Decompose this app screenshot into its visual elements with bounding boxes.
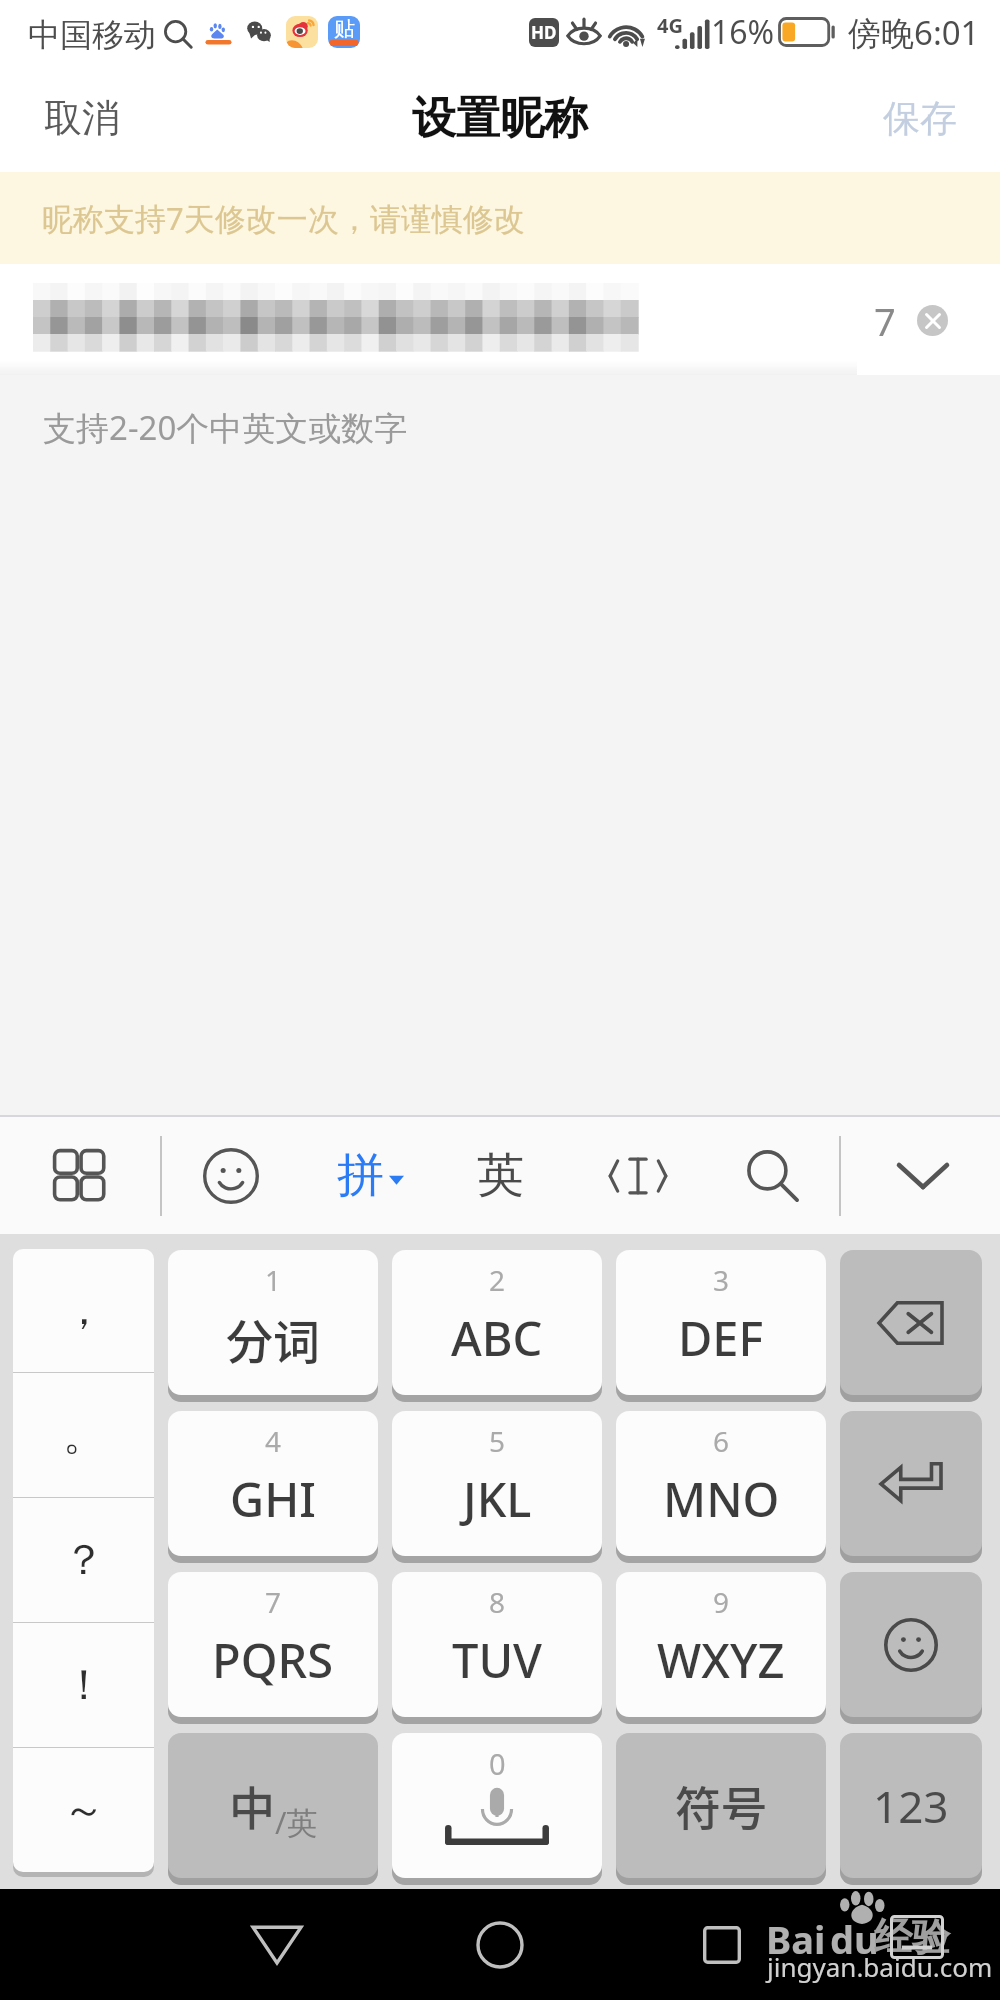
button[interactable]: 7 <box>168 1572 378 1717</box>
staticText: 中国移动 <box>28 15 156 55</box>
staticText: ， <box>63 1284 105 1337</box>
staticText: 支持2-20个中英文或数字 <box>43 405 408 450</box>
button[interactable]: 保存 <box>847 64 1000 172</box>
staticText: /英 <box>275 1801 318 1843</box>
button[interactable]: ， <box>13 1249 154 1372</box>
button[interactable]: 取消 <box>0 64 156 172</box>
button[interactable] <box>0 1117 160 1234</box>
staticText: 6 <box>713 1422 730 1460</box>
staticText: 2 <box>489 1261 506 1299</box>
staticText: 4G <box>657 12 683 39</box>
staticText: 中 <box>229 1772 275 1839</box>
staticText: 3 <box>713 1261 730 1299</box>
button[interactable]: Search <box>708 1117 838 1234</box>
button[interactable]: 9 <box>616 1572 826 1717</box>
staticText: 。 <box>63 1409 105 1462</box>
staticText: jingyan.baidu.com <box>767 1949 993 1984</box>
button[interactable]: Recents <box>648 1889 796 2000</box>
button[interactable]: ～ <box>13 1748 154 1872</box>
staticText: TUV <box>452 1628 543 1692</box>
button[interactable] <box>166 1117 296 1234</box>
staticText: 1 <box>265 1261 282 1299</box>
button[interactable]: 3 <box>616 1250 826 1395</box>
button[interactable]: Voice input <box>392 1733 602 1878</box>
staticText: 8 <box>489 1583 506 1621</box>
staticText: ？ <box>63 1534 105 1587</box>
staticText: WXYZ <box>657 1628 785 1692</box>
button[interactable]: Hide keyboard <box>845 1117 1000 1234</box>
button[interactable]: Switch Chinese English <box>168 1733 378 1878</box>
staticText: 符号 <box>675 1772 767 1839</box>
button[interactable]: Backspace <box>840 1250 982 1395</box>
staticText: 123 <box>873 1776 949 1836</box>
staticText: GHI <box>230 1467 316 1531</box>
staticText: Bai <box>766 1913 826 1965</box>
staticText: 7 <box>874 295 896 347</box>
button[interactable]: 2 <box>392 1250 602 1395</box>
staticText: 拼 <box>337 1146 384 1205</box>
button[interactable]: 符号 <box>616 1733 826 1878</box>
staticText: MNO <box>663 1467 780 1531</box>
staticText: DEF <box>678 1306 764 1370</box>
staticText: 16% <box>711 10 775 54</box>
staticText: 分词 <box>226 1304 320 1372</box>
button[interactable]: 。 <box>13 1373 154 1497</box>
staticText: 保存 <box>883 95 957 142</box>
staticText: ！ <box>63 1659 105 1712</box>
staticText: 0 <box>489 1744 506 1783</box>
button[interactable]: 拼 <box>300 1117 440 1234</box>
staticText: 昵称支持7天修改一次，请谨慎修改 <box>42 197 525 239</box>
staticText: 取消 <box>44 94 120 142</box>
staticText: HD <box>531 21 557 44</box>
button[interactable]: 4 <box>168 1411 378 1556</box>
staticText: ～ <box>63 1784 105 1837</box>
staticText: 5 <box>489 1422 506 1460</box>
button[interactable]: Move cursor <box>573 1117 703 1234</box>
staticText: 9 <box>713 1583 730 1621</box>
staticText: 贴 <box>334 16 355 42</box>
button[interactable]: Emoji <box>840 1572 982 1717</box>
staticText: 7 <box>265 1583 282 1621</box>
staticText: 4 <box>265 1422 282 1460</box>
staticText: 经验 <box>874 1913 950 1961</box>
staticText: 傍晚6:01 <box>848 10 980 55</box>
button[interactable]: 1 <box>168 1250 378 1395</box>
button[interactable]: ？ <box>13 1498 154 1622</box>
button[interactable]: Back <box>203 1889 351 2000</box>
button[interactable]: 英 <box>440 1117 560 1234</box>
button[interactable]: 8 <box>392 1572 602 1717</box>
button[interactable]: ！ <box>13 1623 154 1747</box>
staticText: PQRS <box>212 1628 334 1692</box>
button[interactable]: 123 <box>840 1733 982 1878</box>
button[interactable]: Clear text <box>917 305 948 336</box>
button[interactable]: Enter <box>840 1411 982 1556</box>
button[interactable]: 5 <box>392 1411 602 1556</box>
staticText: JKL <box>463 1467 532 1531</box>
button[interactable]: 6 <box>616 1411 826 1556</box>
staticText: 英 <box>477 1146 524 1205</box>
staticText: ABC <box>451 1306 543 1370</box>
staticText: du <box>830 1913 879 1965</box>
button[interactable]: Home <box>426 1889 574 2000</box>
staticText: 设置昵称 <box>412 91 588 146</box>
